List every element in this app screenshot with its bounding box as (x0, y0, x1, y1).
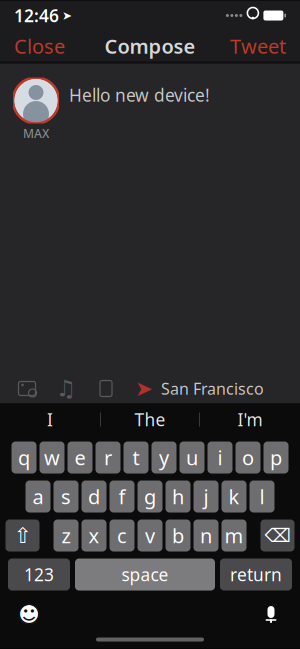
staticText: n (200, 522, 212, 549)
button[interactable]: c (109, 519, 134, 551)
staticText: u (186, 444, 198, 471)
staticText: r (104, 444, 112, 471)
button[interactable]: Tweet (216, 26, 300, 66)
button[interactable]: l (249, 480, 274, 512)
staticText: Compose (104, 33, 195, 59)
staticText: t (132, 444, 139, 471)
staticText: MAX (23, 125, 49, 141)
staticText: ⇧ (13, 523, 31, 548)
button[interactable]: z (53, 519, 78, 551)
button[interactable]: The (101, 403, 199, 435)
button[interactable]: i (207, 441, 232, 473)
staticText: w (44, 444, 60, 471)
staticText: d (88, 483, 100, 510)
button[interactable]: space (75, 558, 215, 590)
button[interactable]: j (193, 480, 218, 512)
staticText: b (172, 522, 184, 549)
staticText: v (145, 522, 155, 549)
staticText: j (203, 483, 208, 510)
button[interactable]: Add document (86, 374, 126, 402)
button[interactable]: return (220, 558, 292, 590)
button[interactable]: t (123, 441, 148, 473)
staticText: x (88, 522, 99, 549)
staticText: z (61, 522, 70, 549)
button[interactable]: Delete (260, 519, 294, 551)
button[interactable]: I (0, 403, 100, 435)
staticText: y (159, 444, 169, 471)
button[interactable]: a (25, 480, 50, 512)
button[interactable]: b (165, 519, 190, 551)
staticText: 12:46 (14, 4, 59, 27)
button[interactable]: u (179, 441, 204, 473)
staticText: c (117, 522, 127, 549)
button[interactable]: f (109, 480, 134, 512)
staticText: l (259, 483, 264, 510)
button[interactable]: 123 (8, 558, 70, 590)
staticText: p (270, 444, 282, 471)
button[interactable]: I'm (200, 403, 300, 435)
staticText: q (18, 444, 30, 471)
button[interactable]: Dictation (256, 599, 286, 629)
staticText: I'm (237, 408, 262, 431)
staticText: ⌫ (264, 525, 290, 546)
staticText: ☺ (16, 601, 41, 628)
button[interactable]: h (165, 480, 190, 512)
staticText: s (61, 483, 71, 510)
staticText: Tweet (230, 33, 286, 59)
staticText: g (144, 483, 156, 510)
button[interactable]: Emoji keyboard (14, 599, 44, 629)
staticText: space (121, 563, 168, 586)
staticText: The (134, 408, 165, 431)
button[interactable]: m (221, 519, 246, 551)
staticText: 123 (24, 563, 54, 586)
button[interactable]: q (11, 441, 36, 473)
button[interactable]: v (137, 519, 162, 551)
button[interactable]: d (81, 480, 106, 512)
button[interactable]: y (151, 441, 176, 473)
button[interactable]: o (235, 441, 260, 473)
button[interactable]: Add music (46, 374, 86, 402)
button[interactable]: w (39, 441, 64, 473)
staticText: a (32, 483, 43, 510)
button[interactable]: x (81, 519, 106, 551)
button[interactable]: r (95, 441, 120, 473)
staticText: ➤ (62, 9, 72, 22)
button[interactable]: Add photo (8, 374, 46, 402)
staticText: o (242, 444, 254, 471)
button[interactable]: Shift (5, 519, 39, 551)
button[interactable]: Close (0, 26, 79, 66)
staticText: m (224, 522, 243, 549)
button[interactable]: ➤ (126, 374, 272, 403)
staticText: e (74, 444, 85, 471)
staticText: i (217, 444, 222, 471)
staticText: I (47, 408, 53, 431)
staticText: return (230, 563, 282, 586)
button[interactable]: g (137, 480, 162, 512)
button[interactable]: n (193, 519, 218, 551)
staticText: f (118, 483, 125, 510)
button[interactable]: p (263, 441, 288, 473)
staticText: San Francisco (161, 378, 264, 399)
staticText: Hello new device! (69, 83, 210, 106)
staticText: ➤ (135, 376, 153, 401)
staticText: Close (14, 33, 65, 59)
button[interactable]: s (53, 480, 78, 512)
button[interactable]: k (221, 480, 246, 512)
button[interactable]: e (67, 441, 92, 473)
staticText: ♫ (56, 376, 76, 401)
staticText: k (228, 483, 239, 510)
staticText: h (172, 483, 184, 510)
